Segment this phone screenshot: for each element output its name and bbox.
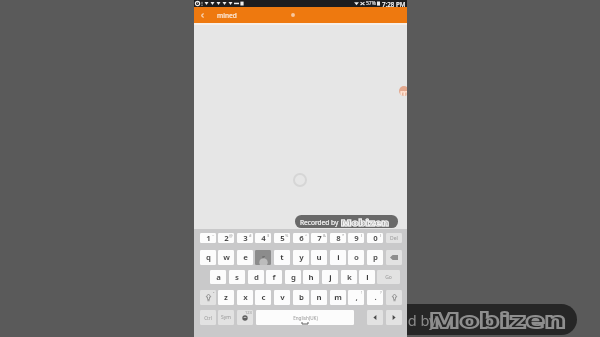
staticText: Mobizen xyxy=(341,217,389,227)
staticText: n xyxy=(316,292,322,303)
staticText: % xyxy=(285,233,289,238)
staticText: Del xyxy=(390,235,398,242)
button[interactable]: r xyxy=(255,250,271,265)
staticText: d xyxy=(254,272,259,283)
button[interactable]: right xyxy=(386,310,402,325)
button[interactable]: j xyxy=(322,270,338,284)
staticText: Go xyxy=(385,274,392,281)
button[interactable]: 1 xyxy=(200,233,216,243)
button[interactable]: w xyxy=(218,250,234,265)
button[interactable]: . xyxy=(367,290,383,305)
button[interactable]: n xyxy=(311,290,327,305)
staticText: e xyxy=(243,252,248,263)
button[interactable]: 2 xyxy=(218,233,234,243)
staticText: o xyxy=(354,252,359,263)
button[interactable]: backspace xyxy=(386,250,402,265)
staticText: l xyxy=(366,272,369,283)
button[interactable]: Add xyxy=(287,9,299,21)
staticText: z xyxy=(224,292,228,303)
staticText: ^ xyxy=(305,233,308,238)
staticText: # xyxy=(249,233,252,238)
button[interactable]: u xyxy=(311,250,327,265)
staticText: f xyxy=(272,272,276,283)
button[interactable]: English(UK) xyxy=(256,310,354,325)
staticText: 57% xyxy=(366,0,376,7)
staticText: y xyxy=(299,252,304,263)
button[interactable]: x xyxy=(237,290,253,305)
staticText: g xyxy=(291,272,296,283)
button[interactable]: l xyxy=(359,270,375,284)
staticText: 0 xyxy=(373,233,378,243)
button[interactable]: shift xyxy=(200,290,216,305)
staticText: 3 xyxy=(243,233,248,243)
staticText: 7:28 PM xyxy=(382,0,406,7)
staticText: Recorded by xyxy=(352,310,437,330)
button[interactable]: Go xyxy=(377,270,400,284)
staticText: Ctrl xyxy=(204,315,212,321)
button[interactable]: q xyxy=(200,250,216,265)
button[interactable]: d xyxy=(248,270,264,284)
button[interactable]: 6 xyxy=(293,233,309,243)
staticText: i xyxy=(337,252,340,263)
button[interactable]: Mobizen recorder xyxy=(399,86,407,96)
button[interactable]: 3 xyxy=(237,233,253,243)
button[interactable]: t xyxy=(274,250,290,265)
button[interactable]: k xyxy=(341,270,357,284)
staticText: r xyxy=(262,253,265,263)
button[interactable]: 5 xyxy=(274,233,290,243)
staticText: Mobizen xyxy=(429,306,567,334)
button[interactable]: h xyxy=(303,270,319,284)
staticText: Sym xyxy=(221,314,231,321)
button[interactable]: v xyxy=(274,290,290,305)
staticText: ? xyxy=(380,290,382,295)
button[interactable]: s xyxy=(229,270,245,284)
staticText: & xyxy=(323,233,326,238)
staticText: p xyxy=(373,252,378,263)
button[interactable]: z xyxy=(218,290,234,305)
button[interactable]: g xyxy=(285,270,301,284)
staticText: ( xyxy=(361,233,363,238)
button[interactable]: p xyxy=(367,250,383,265)
staticText: j xyxy=(329,272,332,283)
staticText: • xyxy=(213,290,215,295)
button[interactable]: 4 xyxy=(255,233,271,243)
staticText: h xyxy=(308,272,314,283)
staticText: ~ xyxy=(212,233,215,238)
button[interactable]: b xyxy=(293,290,309,305)
staticText: q xyxy=(206,252,211,263)
staticText: b xyxy=(299,292,304,303)
button[interactable]: left xyxy=(367,310,383,325)
button[interactable]: , xyxy=(348,290,364,305)
button[interactable]: emoji xyxy=(237,310,253,325)
staticText: . xyxy=(374,292,377,303)
button[interactable]: y xyxy=(293,250,309,265)
staticText: a xyxy=(216,272,221,283)
staticText: v xyxy=(280,292,285,303)
button[interactable]: Sym xyxy=(218,310,234,325)
button[interactable]: c xyxy=(255,290,271,305)
button[interactable]: 9 xyxy=(348,233,364,243)
button[interactable]: Del xyxy=(386,233,402,243)
staticText: , xyxy=(355,292,358,303)
button[interactable]: e xyxy=(237,250,253,265)
button[interactable]: o xyxy=(348,250,364,265)
staticText: t xyxy=(280,252,284,263)
button[interactable]: Ctrl xyxy=(200,310,216,325)
button[interactable]: f xyxy=(266,270,282,284)
button[interactable]: 0 xyxy=(367,233,383,243)
staticText: Recorded by xyxy=(300,218,339,227)
staticText: mined xyxy=(217,11,237,20)
staticText: 7 xyxy=(317,233,322,243)
button[interactable]: i xyxy=(330,250,346,265)
button[interactable]: 8 xyxy=(330,233,346,243)
staticText: w xyxy=(223,252,230,263)
button[interactable]: Navigate up xyxy=(196,9,209,22)
staticText: m xyxy=(334,292,342,303)
button[interactable]: 7 xyxy=(311,233,327,243)
staticText: 8 xyxy=(336,233,341,243)
button[interactable]: shift xyxy=(386,290,402,305)
staticText: 123 xyxy=(245,310,252,315)
button[interactable]: a xyxy=(210,270,226,284)
staticText: m xyxy=(400,86,407,96)
button[interactable]: m xyxy=(330,290,346,305)
